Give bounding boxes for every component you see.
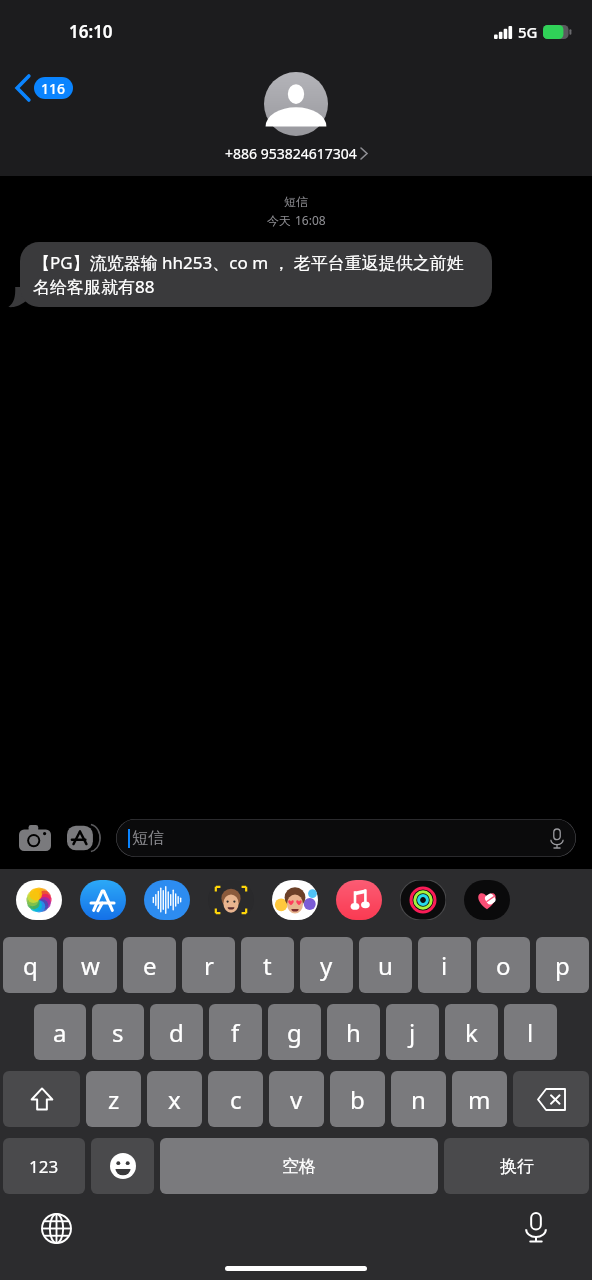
button[interactable]: Memoji: [208, 880, 254, 920]
button[interactable]: Dictation: [516, 1208, 556, 1248]
button[interactable]: r: [182, 937, 235, 993]
staticText: m: [468, 1083, 491, 1116]
staticText: 短信: [0, 194, 592, 209]
button[interactable]: q: [3, 937, 57, 993]
staticText: c: [230, 1083, 242, 1116]
button[interactable]: a: [34, 1004, 86, 1060]
button[interactable]: Audio message: [144, 880, 190, 920]
button[interactable]: 【PG】流览器输 hh253、co m ， 老平台重返提供之前姓名给客服就有88: [20, 242, 492, 307]
button[interactable]: Memoji stickers: [272, 880, 318, 920]
button[interactable]: z: [86, 1071, 141, 1127]
button[interactable]: App Store: [80, 880, 126, 920]
button[interactable]: e: [123, 937, 176, 993]
button[interactable]: +886 953824617304: [225, 72, 367, 163]
staticText: q: [23, 949, 38, 982]
staticText: 空格: [282, 1156, 316, 1177]
button[interactable]: p: [536, 937, 589, 993]
other: Dictate: [550, 829, 564, 848]
button[interactable]: 123: [3, 1138, 85, 1194]
button[interactable]: i: [418, 937, 471, 993]
button[interactable]: Health: [464, 880, 510, 920]
button[interactable]: c: [208, 1071, 263, 1127]
staticText: n: [411, 1083, 426, 1116]
button[interactable]: h: [327, 1004, 380, 1060]
button[interactable]: Change keyboard language: [36, 1208, 76, 1248]
staticText: u: [378, 949, 393, 982]
staticText: j: [409, 1016, 416, 1049]
button[interactable]: Fitness: [400, 880, 446, 920]
staticText: 5G: [518, 22, 538, 42]
staticText: v: [290, 1083, 303, 1116]
staticText: z: [108, 1083, 120, 1116]
staticText: s: [112, 1016, 124, 1049]
button[interactable]: Delete: [513, 1071, 589, 1127]
button[interactable]: d: [150, 1004, 203, 1060]
staticText: w: [81, 949, 100, 982]
button[interactable]: n: [391, 1071, 446, 1127]
button[interactable]: u: [359, 937, 412, 993]
staticText: 今天: [267, 212, 295, 228]
button[interactable]: Camera: [16, 819, 54, 857]
button[interactable]: g: [268, 1004, 321, 1060]
staticText: y: [320, 949, 333, 982]
staticText: o: [496, 949, 511, 982]
staticText: r: [204, 949, 214, 982]
button[interactable]: j: [386, 1004, 439, 1060]
button[interactable]: k: [445, 1004, 498, 1060]
button[interactable]: l: [504, 1004, 557, 1060]
button[interactable]: Shift: [3, 1071, 80, 1127]
button[interactable]: App Store: [66, 819, 104, 857]
button[interactable]: s: [92, 1004, 144, 1060]
staticText: 换行: [500, 1156, 534, 1177]
button[interactable]: v: [269, 1071, 324, 1127]
button[interactable]: y: [300, 937, 353, 993]
button[interactable]: t: [241, 937, 294, 993]
button[interactable]: Back to 116 conversations: [16, 76, 73, 100]
staticText: +886 953824617304: [225, 144, 357, 163]
staticText: t: [263, 949, 272, 982]
button[interactable]: Photos: [16, 880, 62, 920]
staticText: 123: [29, 1155, 59, 1178]
staticText: a: [53, 1016, 67, 1049]
button[interactable]: m: [452, 1071, 507, 1127]
staticText: g: [287, 1016, 302, 1049]
button[interactable]: w: [63, 937, 117, 993]
staticText: k: [465, 1016, 478, 1049]
button[interactable]: o: [477, 937, 530, 993]
staticText: h: [346, 1016, 361, 1049]
staticText: d: [169, 1016, 184, 1049]
staticText: 短信: [132, 828, 164, 848]
staticText: 16:08: [295, 212, 326, 228]
button[interactable]: Emoji: [91, 1138, 154, 1194]
staticText: 16:10: [69, 20, 113, 43]
staticText: x: [168, 1083, 181, 1116]
button[interactable]: f: [209, 1004, 262, 1060]
staticText: e: [143, 949, 157, 982]
staticText: l: [527, 1016, 534, 1049]
staticText: i: [441, 949, 448, 982]
button[interactable]: b: [330, 1071, 385, 1127]
button[interactable]: 换行: [444, 1138, 589, 1194]
staticText: 116: [41, 79, 66, 98]
button[interactable]: 短信: [116, 819, 576, 857]
staticText: f: [231, 1016, 240, 1049]
button[interactable]: 空格: [160, 1138, 438, 1194]
staticText: 【PG】流览器输 hh253、co m ， 老平台重返提供之前姓名给客服就有88: [33, 251, 479, 298]
button[interactable]: x: [147, 1071, 202, 1127]
button[interactable]: Music: [336, 880, 382, 920]
staticText: b: [350, 1083, 365, 1116]
staticText: p: [555, 949, 570, 982]
